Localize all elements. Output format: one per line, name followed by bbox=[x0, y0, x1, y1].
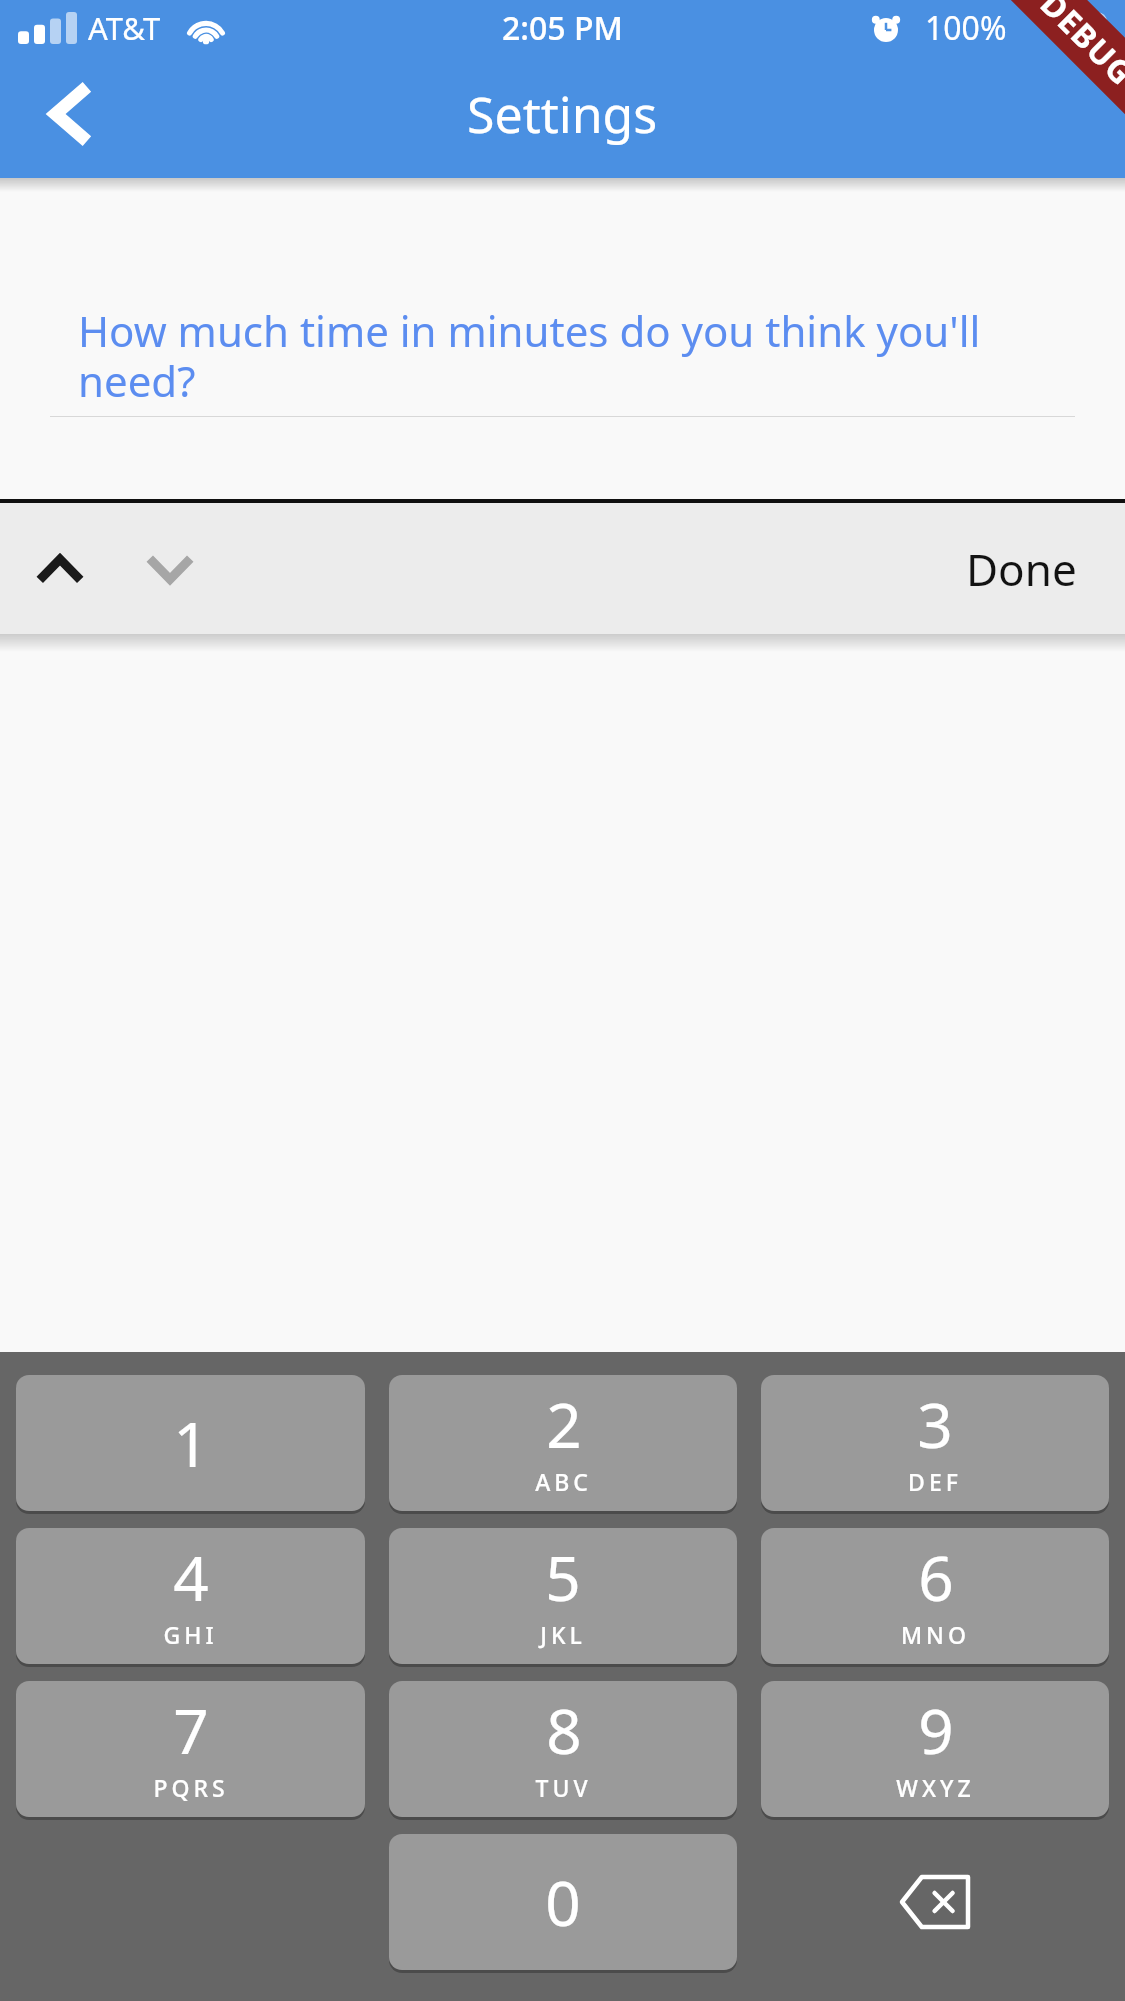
button[interactable]: 4 bbox=[16, 1528, 365, 1664]
button[interactable]: 6 bbox=[761, 1528, 1109, 1664]
button[interactable]: 7 bbox=[16, 1681, 365, 1817]
button[interactable]: 2 bbox=[389, 1375, 737, 1511]
staticText: DEF bbox=[908, 1466, 962, 1497]
staticText: AT&T bbox=[88, 7, 161, 49]
staticText: MNO bbox=[901, 1619, 970, 1650]
button[interactable]: 8 bbox=[389, 1681, 737, 1817]
staticText: 9 bbox=[918, 1688, 954, 1772]
staticText: 8 bbox=[546, 1688, 582, 1772]
staticText: 100% bbox=[925, 6, 1007, 50]
staticText: How much time in minutes do you think yo… bbox=[78, 302, 1051, 410]
staticText: PQRS bbox=[153, 1772, 229, 1803]
button[interactable]: Next field bbox=[128, 527, 212, 611]
staticText: WXYZ bbox=[896, 1772, 975, 1803]
button[interactable]: 3 bbox=[761, 1375, 1109, 1511]
button[interactable]: Done bbox=[948, 525, 1095, 613]
staticText: GHI bbox=[163, 1619, 218, 1650]
staticText: Done bbox=[966, 539, 1077, 599]
staticText: 4 bbox=[173, 1535, 209, 1619]
button[interactable]: 0 bbox=[389, 1834, 737, 1970]
staticText: 0 bbox=[545, 1860, 581, 1944]
staticText: Settings bbox=[467, 80, 658, 148]
button[interactable]: Back bbox=[18, 62, 122, 166]
button[interactable]: 9 bbox=[761, 1681, 1109, 1817]
button[interactable]: Backspace bbox=[761, 1834, 1109, 1970]
staticText: 3 bbox=[917, 1382, 953, 1466]
staticText: TUV bbox=[535, 1772, 592, 1803]
staticText: JKL bbox=[540, 1619, 586, 1650]
staticText: 2:05 PM bbox=[502, 6, 623, 50]
staticText: 6 bbox=[918, 1535, 954, 1619]
button[interactable]: 1 bbox=[16, 1375, 365, 1511]
staticText: 5 bbox=[545, 1535, 581, 1619]
staticText: 2 bbox=[546, 1382, 582, 1466]
button[interactable]: How much time in minutes do you think yo… bbox=[50, 302, 1075, 417]
button[interactable]: Previous field bbox=[18, 527, 102, 611]
button[interactable]: 5 bbox=[389, 1528, 737, 1664]
staticText: DEBUG bbox=[1031, 0, 1125, 95]
staticText: 7 bbox=[173, 1688, 209, 1772]
staticText: 1 bbox=[173, 1401, 209, 1485]
staticText: ABC bbox=[535, 1466, 592, 1497]
